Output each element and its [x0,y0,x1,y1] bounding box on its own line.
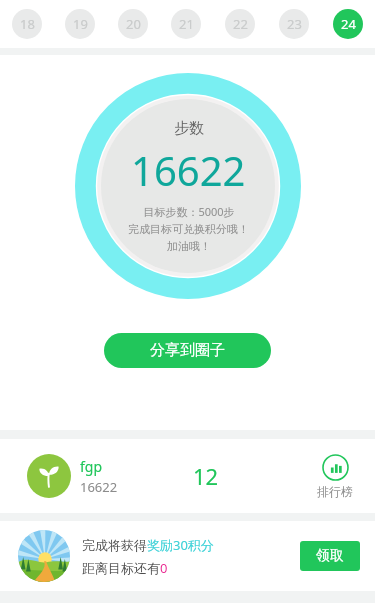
staticText: 19 [73,15,88,33]
button[interactable]: 排行榜 [313,454,357,499]
staticText: 分享到圈子 [150,341,225,360]
staticText: 20 [126,15,141,33]
button[interactable]: fgp [0,439,375,513]
staticText: 步数 [174,119,204,138]
staticText: 21 [179,15,194,33]
staticText: fgp [80,457,103,476]
button[interactable]: 分享到圈子 [104,333,271,368]
staticText: 23 [287,15,302,33]
button[interactable]: 23 [267,0,321,48]
button[interactable]: 19 [53,0,106,48]
staticText: 24 [341,15,356,33]
staticText: 排行榜 [317,484,353,499]
button[interactable]: 24 [321,0,375,48]
button[interactable]: 20 [106,0,159,48]
staticText: 加油哦！ [167,239,211,253]
button[interactable]: 22 [213,0,267,48]
staticText: 16622 [80,478,118,496]
staticText: 22 [233,15,248,33]
staticText: 距离目标还有0 [82,559,168,577]
staticText: 16622 [131,143,246,197]
staticText: 12 [193,461,219,491]
staticText: 完成目标可兑换积分哦！ [128,222,249,236]
button[interactable]: 18 [0,0,53,48]
staticText: 18 [20,15,35,33]
staticText: 目标步数：5000步 [143,204,235,219]
staticText: 完成将获得奖励30积分 [82,536,214,554]
button[interactable]: 21 [159,0,213,48]
button[interactable]: 领取 [300,541,360,571]
staticText: 领取 [316,547,344,565]
